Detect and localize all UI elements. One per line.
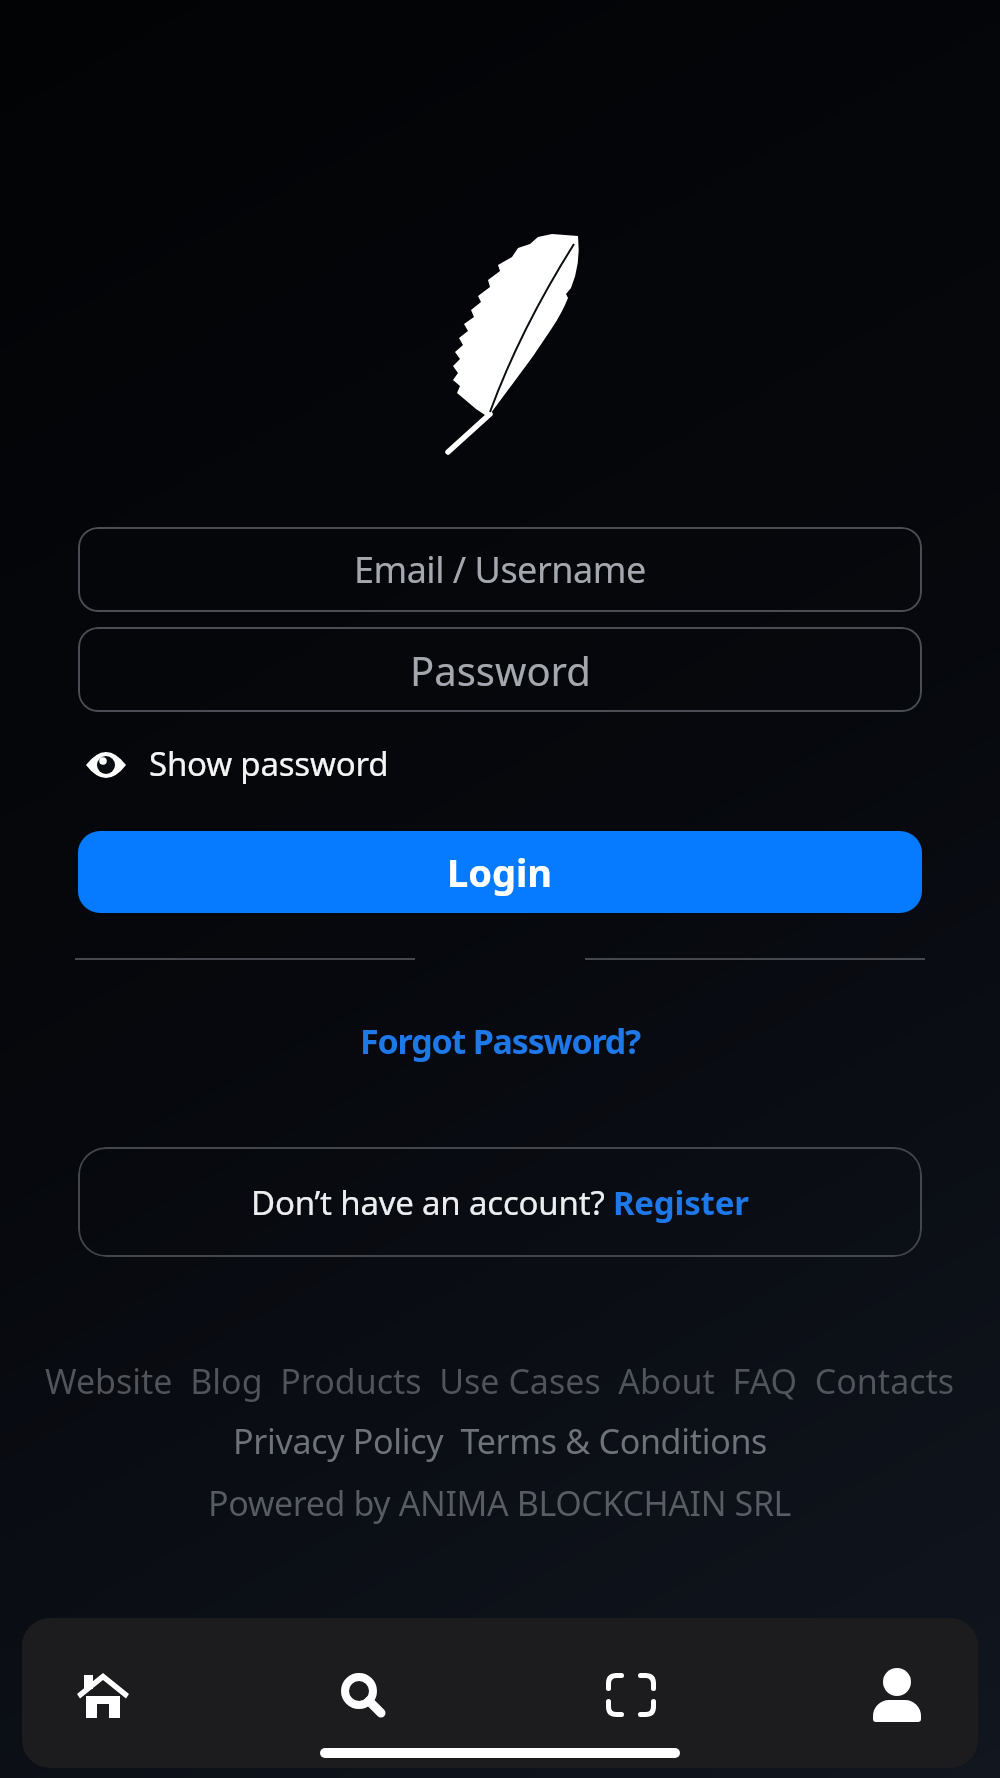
staticText: Don’t have an account? Register xyxy=(251,1180,749,1225)
staticText: Website Blog Products Use Cases About FA… xyxy=(45,1358,955,1402)
button[interactable] xyxy=(847,1650,947,1740)
button[interactable]: Forgot Password? xyxy=(0,1018,1000,1062)
staticText: Powered by ANIMA BLOCKCHAIN SRL xyxy=(208,1480,792,1524)
button[interactable] xyxy=(581,1650,681,1740)
button[interactable]: Password xyxy=(78,627,922,712)
button[interactable]: Email / Username xyxy=(78,527,922,612)
staticText: Login xyxy=(447,846,553,898)
button[interactable]: Show password xyxy=(85,740,389,786)
button[interactable]: Don’t have an account? Register xyxy=(78,1147,922,1257)
staticText: Show password xyxy=(149,741,389,786)
button[interactable] xyxy=(313,1650,413,1740)
staticText: Forgot Password? xyxy=(360,1018,641,1062)
staticText: Password xyxy=(410,643,591,697)
button[interactable] xyxy=(53,1650,153,1740)
button[interactable]: Login xyxy=(78,831,922,913)
staticText: Email / Username xyxy=(354,545,646,594)
staticText: Privacy Policy Terms & Conditions xyxy=(233,1418,768,1462)
